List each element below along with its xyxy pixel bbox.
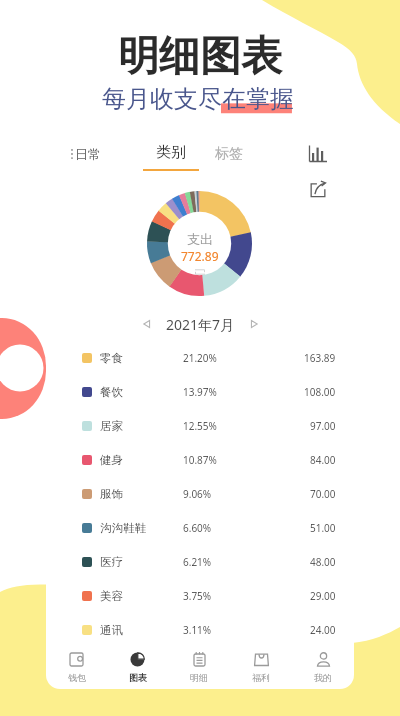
staticText: 2021年7月 bbox=[166, 315, 235, 334]
staticText: 3.75% bbox=[183, 589, 212, 603]
staticText: 美容 bbox=[100, 589, 123, 603]
button[interactable]: 图表 bbox=[107, 646, 168, 688]
staticText: 日常 bbox=[75, 146, 101, 162]
staticText: 51.00 bbox=[310, 521, 336, 535]
button[interactable]: Share bbox=[309, 180, 327, 198]
staticText: 健身 bbox=[100, 453, 123, 467]
staticText: 服饰 bbox=[100, 487, 123, 501]
button[interactable]: 零食 bbox=[46, 341, 354, 375]
button[interactable]: 医疗 bbox=[46, 545, 354, 579]
button[interactable]: 日常 bbox=[70, 146, 101, 162]
staticText: 沟沟鞋鞋 bbox=[100, 521, 146, 535]
staticText: 支出 bbox=[187, 231, 213, 247]
button[interactable]: 服饰 bbox=[46, 477, 354, 511]
button[interactable]: 沟沟鞋鞋 bbox=[46, 511, 354, 545]
button[interactable]: 明细 bbox=[168, 646, 230, 688]
staticText: 明细图表 bbox=[118, 31, 282, 83]
staticText: 图表 bbox=[129, 672, 147, 683]
staticText: 108.00 bbox=[304, 385, 336, 399]
button[interactable]: 我的 bbox=[292, 646, 354, 688]
staticText: 24.00 bbox=[310, 623, 336, 637]
button[interactable]: Statistics bbox=[308, 144, 328, 164]
staticText: 餐饮 bbox=[100, 385, 123, 399]
button[interactable]: 健身 bbox=[46, 443, 354, 477]
staticText: 70.00 bbox=[310, 487, 336, 501]
staticText: 29.00 bbox=[310, 589, 336, 603]
staticText: 6.21% bbox=[183, 555, 212, 569]
button[interactable]: 钱包 bbox=[46, 646, 107, 688]
staticText: 我的 bbox=[314, 672, 332, 683]
staticText: 97.00 bbox=[310, 419, 336, 433]
button[interactable]: Next month bbox=[246, 316, 262, 332]
staticText: 13.97% bbox=[183, 385, 217, 399]
staticText: 84.00 bbox=[310, 453, 336, 467]
button[interactable]: 美容 bbox=[46, 579, 354, 613]
staticText: 每月收支尽在掌握 bbox=[102, 84, 294, 114]
button[interactable]: 餐饮 bbox=[46, 375, 354, 409]
staticText: 9.06% bbox=[183, 487, 212, 501]
staticText: 772.89 bbox=[181, 248, 219, 264]
button[interactable]: 居家 bbox=[46, 409, 354, 443]
staticText: 医疗 bbox=[100, 555, 123, 569]
staticText: 零食 bbox=[100, 351, 123, 365]
staticText: 10.87% bbox=[183, 453, 217, 467]
staticText: 类别 bbox=[156, 143, 186, 162]
staticText: 6.60% bbox=[183, 521, 212, 535]
button[interactable]: Switch chart bbox=[194, 267, 206, 277]
button[interactable]: 通讯 bbox=[46, 613, 354, 647]
staticText: 福利 bbox=[252, 672, 270, 683]
button[interactable]: 标签 bbox=[215, 145, 243, 163]
staticText: 居家 bbox=[100, 419, 123, 433]
button[interactable]: 福利 bbox=[230, 646, 292, 688]
staticText: 12.55% bbox=[183, 419, 217, 433]
button[interactable]: Previous month bbox=[139, 316, 155, 332]
staticText: 标签 bbox=[215, 145, 243, 163]
staticText: 钱包 bbox=[68, 672, 86, 683]
staticText: 163.89 bbox=[304, 351, 336, 365]
staticText: 3.11% bbox=[183, 623, 212, 637]
staticText: 通讯 bbox=[100, 623, 123, 637]
staticText: 明细 bbox=[190, 672, 208, 683]
button[interactable]: 类别 bbox=[143, 143, 199, 171]
staticText: 21.20% bbox=[183, 351, 217, 365]
staticText: 48.00 bbox=[310, 555, 336, 569]
